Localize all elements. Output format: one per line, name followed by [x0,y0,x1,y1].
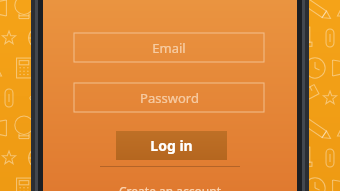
button[interactable]: Log in [116,131,227,160]
staticText: Password [140,89,199,107]
staticText: Email [152,39,186,57]
staticText: Log in [150,136,193,155]
button[interactable]: Create an account [100,183,240,191]
button[interactable]: Email [74,33,264,62]
staticText: Create an account [119,183,221,191]
button[interactable]: Password [74,83,264,112]
